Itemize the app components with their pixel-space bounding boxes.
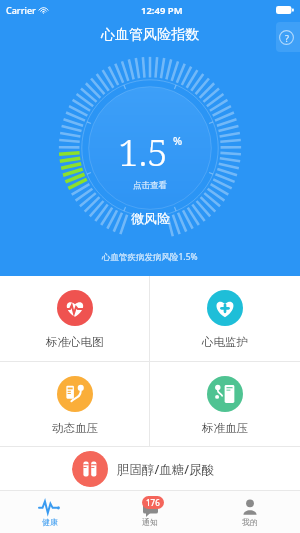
button[interactable]: 动态血压 <box>0 362 149 446</box>
staticText: 1.5 <box>118 126 168 176</box>
staticText: 胆固醇/血糖/尿酸 <box>117 461 215 478</box>
staticText: 心电监护 <box>202 335 248 349</box>
button[interactable]: Help <box>276 22 300 52</box>
staticText: Carrier <box>6 4 36 16</box>
button[interactable]: 心电监护 <box>150 276 300 361</box>
button[interactable]: 标准心电图 <box>0 276 149 361</box>
staticText: 标准心电图 <box>46 335 104 349</box>
button[interactable]: 标准血压 <box>150 362 300 446</box>
button[interactable]: 胆固醇/血糖/尿酸 <box>72 451 229 487</box>
staticText: 动态血压 <box>52 421 98 435</box>
staticText: 心血管风险指数 <box>101 26 199 44</box>
staticText: 通知 <box>142 517 158 527</box>
staticText: 心血管疾病发病风险1.5% <box>102 251 198 263</box>
button[interactable]: 点击查看 <box>133 180 167 191</box>
staticText: 微风险 <box>131 210 170 226</box>
staticText: ? <box>285 32 289 44</box>
staticText: 健康 <box>42 517 58 527</box>
button[interactable]: 176 <box>100 491 200 533</box>
button[interactable]: 我的 <box>200 491 300 533</box>
staticText: 12:49 PM <box>141 4 183 17</box>
staticText: % <box>173 133 183 148</box>
staticText: 176 <box>146 497 160 508</box>
button[interactable]: 健康 <box>0 491 100 533</box>
staticText: 标准血压 <box>202 421 248 435</box>
staticText: 我的 <box>242 517 258 527</box>
